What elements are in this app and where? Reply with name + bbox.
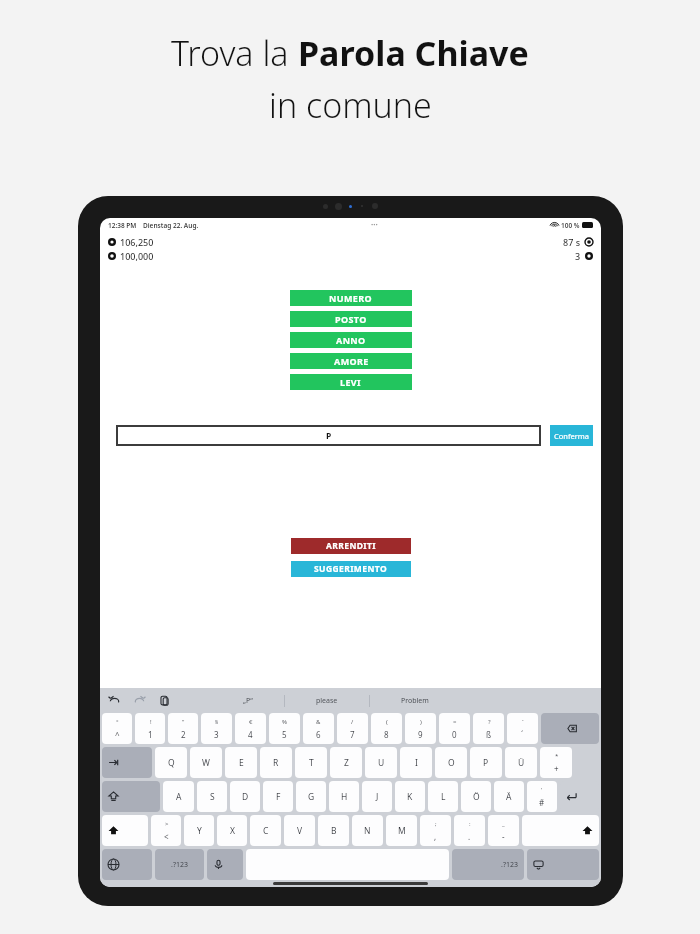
staticText: O (448, 757, 455, 769)
button[interactable]: ( (371, 713, 402, 744)
staticText: ' (541, 786, 543, 794)
button[interactable]: J (362, 781, 392, 812)
staticText: 4 (248, 729, 253, 740)
button[interactable]: SUGGERIMENTO (291, 561, 411, 577)
button[interactable]: S (197, 781, 227, 812)
staticText: § (215, 718, 219, 726)
staticText: ! (150, 718, 152, 726)
button[interactable]: A (163, 781, 194, 812)
button[interactable]: M (386, 815, 417, 846)
button[interactable]: ANNO (290, 332, 412, 348)
staticText: ANNO (336, 334, 366, 346)
button[interactable]: Ä (494, 781, 524, 812)
button[interactable]: § (201, 713, 232, 744)
button[interactable]: * (540, 747, 572, 778)
button[interactable]: ! (135, 713, 165, 744)
button[interactable]: .?123 (155, 849, 204, 880)
button[interactable]: W (190, 747, 222, 778)
button[interactable]: NUMERO (290, 290, 412, 306)
staticText: T (309, 757, 314, 769)
staticText: * (555, 752, 559, 760)
button[interactable]: Caps lock (102, 781, 160, 812)
button[interactable]: € (235, 713, 266, 744)
button[interactable]: _ (488, 815, 519, 846)
button[interactable]: ° (102, 713, 132, 744)
button[interactable]: B (318, 815, 349, 846)
button[interactable]: Shift (102, 815, 148, 846)
button[interactable]: Hide keyboard (527, 849, 599, 880)
button[interactable]: C (250, 815, 281, 846)
staticText: ° (116, 718, 119, 726)
button[interactable]: Redo (132, 693, 147, 708)
button[interactable]: .?123 (452, 849, 524, 880)
button[interactable]: ` (507, 713, 538, 744)
staticText: W (202, 757, 210, 769)
button[interactable]: LEVI (290, 374, 412, 390)
staticText: 1 (148, 729, 153, 740)
button[interactable]: ; (420, 815, 451, 846)
button[interactable]: & (303, 713, 334, 744)
staticText: 87 s (563, 236, 581, 248)
button[interactable]: Conferma (550, 425, 593, 446)
button[interactable]: U (365, 747, 397, 778)
button[interactable]: H (329, 781, 359, 812)
staticText: 2 (181, 729, 186, 740)
button[interactable]: X (217, 815, 247, 846)
staticText: 3 (575, 250, 581, 262)
button[interactable]: L (428, 781, 458, 812)
staticText: 6 (316, 729, 321, 740)
button[interactable]: Y (184, 815, 214, 846)
staticText: 3 (214, 729, 219, 740)
staticText: M (398, 825, 406, 837)
button[interactable]: ? (473, 713, 504, 744)
button[interactable]: D (230, 781, 260, 812)
button[interactable]: G (296, 781, 326, 812)
button[interactable]: T (295, 747, 327, 778)
button[interactable]: Undo (107, 693, 122, 708)
staticText: 7 (350, 729, 355, 740)
button[interactable]: Dictation (207, 849, 243, 880)
button[interactable]: Ö (461, 781, 491, 812)
button[interactable]: Return (560, 781, 599, 812)
button[interactable]: R (260, 747, 292, 778)
button[interactable]: > (151, 815, 181, 846)
staticText: please (316, 696, 338, 706)
button[interactable]: ' (527, 781, 557, 812)
button[interactable]: I (400, 747, 432, 778)
staticText: Y (197, 825, 202, 837)
button[interactable]: O (435, 747, 467, 778)
button[interactable]: % (269, 713, 300, 744)
button[interactable]: Paste (157, 693, 172, 708)
button[interactable]: " (168, 713, 198, 744)
button[interactable]: F (263, 781, 293, 812)
button[interactable]: P (470, 747, 502, 778)
button[interactable]: Q (155, 747, 187, 778)
staticText: - (502, 831, 505, 842)
button[interactable]: Shift (522, 815, 599, 846)
staticText: 8 (384, 729, 389, 740)
button[interactable]: ARRENDITI (291, 538, 411, 554)
button[interactable]: N (352, 815, 383, 846)
button[interactable]: : (454, 815, 485, 846)
staticText: C (263, 825, 269, 837)
button[interactable]: = (439, 713, 470, 744)
button[interactable]: P (116, 425, 541, 446)
staticText: ( (386, 718, 388, 726)
button[interactable]: AMORE (290, 353, 412, 369)
button[interactable]: ) (405, 713, 436, 744)
button[interactable]: E (225, 747, 257, 778)
button[interactable]: Ü (505, 747, 537, 778)
button[interactable]: POSTO (290, 311, 412, 327)
button[interactable]: Backspace (541, 713, 599, 744)
staticText: 0 (452, 729, 457, 740)
staticText: U (378, 757, 385, 769)
button[interactable]: K (395, 781, 425, 812)
button[interactable]: / (337, 713, 368, 744)
button[interactable]: Change language (102, 849, 152, 880)
staticText: _ (502, 820, 505, 828)
button[interactable]: V (284, 815, 315, 846)
button[interactable]: Tab (102, 747, 152, 778)
staticText: ; (435, 820, 437, 828)
button[interactable]: Z (330, 747, 362, 778)
